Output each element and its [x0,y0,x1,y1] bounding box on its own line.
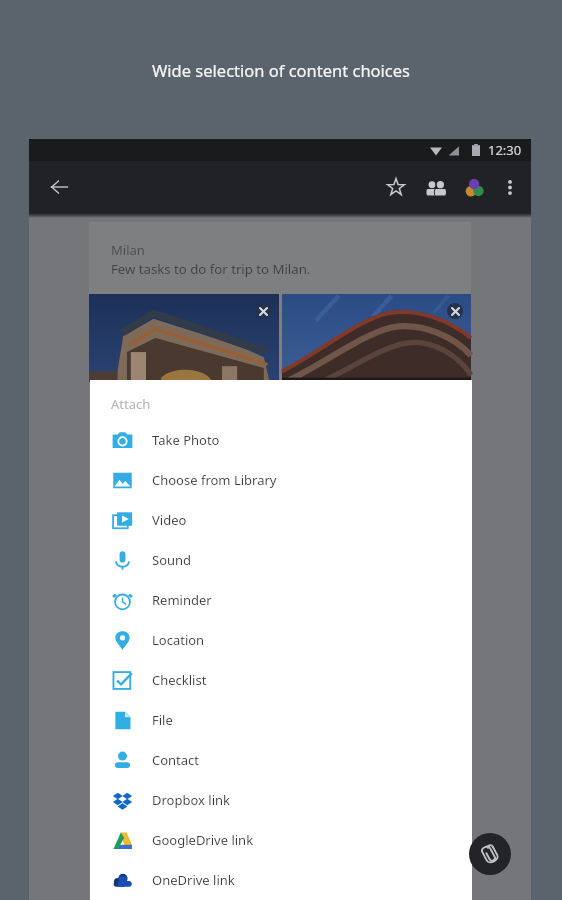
staticText: Wide selection of content choices [0,59,562,81]
staticText: Checklist [152,671,207,689]
button[interactable]: Sound [90,540,472,580]
button[interactable]: Choose from Library [90,460,472,500]
staticText: Choose from Library [152,471,277,489]
staticText: OneDrive link [152,871,235,889]
button[interactable]: More options [494,169,530,205]
button[interactable]: GoogleDrive link [90,820,472,860]
button[interactable]: Remove photo [447,303,463,319]
button[interactable]: Favourite [376,167,416,207]
staticText: Attach [111,395,151,413]
button[interactable]: Video [90,500,472,540]
button[interactable]: Colour [455,168,494,207]
button[interactable]: Contact [90,740,472,780]
button[interactable]: Checklist [90,660,472,700]
staticText: GoogleDrive link [152,831,254,849]
button[interactable]: Remove photo [255,303,271,319]
staticText: Take Photo [152,431,220,449]
staticText: File [152,711,173,729]
button[interactable]: Take Photo [90,420,472,460]
button[interactable]: Collaborators [416,168,455,207]
button[interactable]: Attach [469,833,511,875]
staticText: 12:30 [488,141,522,159]
staticText: Video [152,511,187,529]
staticText: Milan [111,241,145,259]
staticText: Location [152,631,205,649]
button[interactable]: File [90,700,472,740]
staticText: Reminder [152,591,212,609]
staticText: Contact [152,751,200,769]
staticText: Few tasks to do for trip to Milan. [111,260,311,278]
button[interactable]: Reminder [90,580,472,620]
staticText: Sound [152,551,192,569]
button[interactable]: OneDrive link [90,860,472,900]
button[interactable]: Dropbox link [90,780,472,820]
button[interactable]: Back [38,166,80,208]
button[interactable]: Location [90,620,472,660]
staticText: Dropbox link [152,791,231,809]
